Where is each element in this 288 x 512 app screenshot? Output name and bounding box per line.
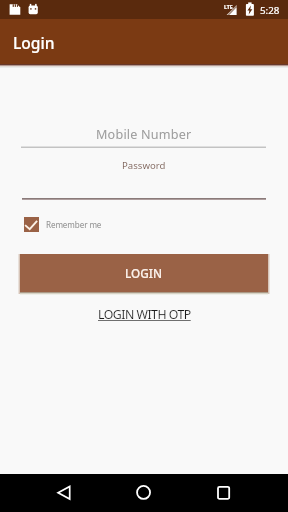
staticText: Password [122, 159, 166, 172]
button[interactable]: Remember me [24, 214, 102, 234]
staticText: Mobile Number [96, 126, 192, 143]
button[interactable]: LOGIN WITH OTP [94, 304, 195, 325]
button[interactable]: Recent apps [204, 474, 244, 512]
staticText: LOGIN [125, 265, 163, 281]
staticText: LOGIN WITH OTP [98, 306, 191, 323]
button[interactable]: Mobile Number [0, 121, 288, 147]
button[interactable]: Back [44, 474, 84, 512]
staticText: LTE [224, 3, 233, 10]
button[interactable]: LOGIN [20, 254, 268, 292]
button[interactable]: Home [123, 474, 163, 512]
staticText: Remember me [46, 219, 102, 230]
staticText: Login [13, 32, 55, 53]
staticText: 5:28 [260, 4, 280, 17]
